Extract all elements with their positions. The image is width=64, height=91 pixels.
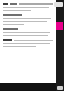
button[interactable] (0, 0, 56, 83)
button[interactable]: Menu (54, 2, 63, 7)
button[interactable]: Scrollbar (56, 0, 64, 91)
button[interactable]: Page indicator (57, 86, 63, 90)
